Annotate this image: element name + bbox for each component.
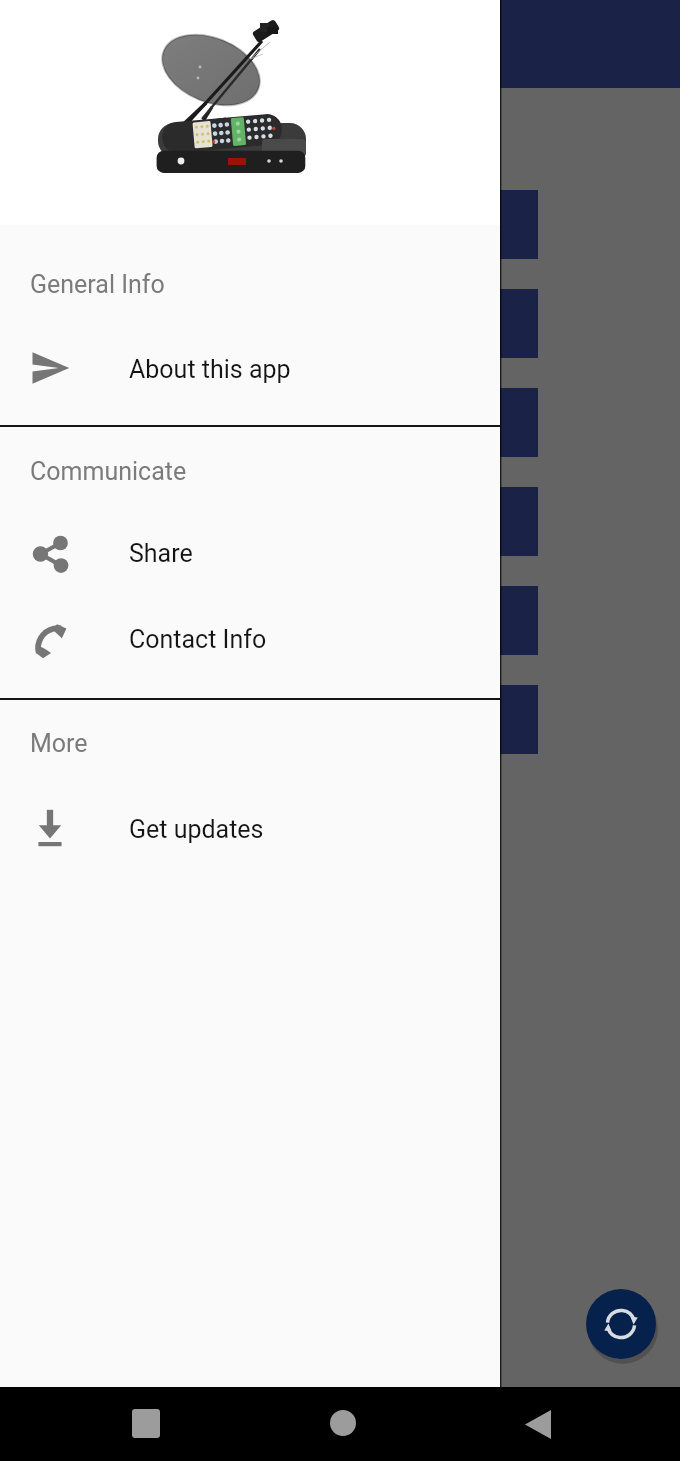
button[interactable]: Refresh xyxy=(586,1289,656,1359)
button[interactable]: Recent apps xyxy=(132,1409,160,1438)
staticText: Share xyxy=(129,539,193,568)
button[interactable]: Get updates xyxy=(0,785,500,871)
button[interactable]: Home xyxy=(330,1410,356,1436)
staticText: More xyxy=(30,729,88,758)
staticText: Communicate xyxy=(30,457,187,486)
staticText: General Info xyxy=(30,270,165,299)
button[interactable]: Back xyxy=(525,1410,551,1439)
button[interactable]: Contact Info xyxy=(0,597,500,683)
staticText: Contact Info xyxy=(129,625,267,654)
staticText: About this app xyxy=(129,355,291,384)
button[interactable]: Share xyxy=(0,511,500,597)
button[interactable]: About this app xyxy=(0,325,500,411)
staticText: Get updates xyxy=(129,815,264,844)
